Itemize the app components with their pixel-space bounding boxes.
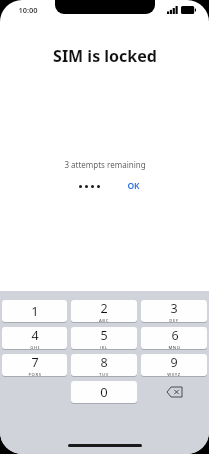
staticText: 3 [170, 300, 178, 317]
staticText: DEF [169, 318, 179, 322]
staticText: JKL [100, 345, 108, 349]
button[interactable]: 2 [71, 300, 137, 322]
staticText: 9 [170, 354, 178, 371]
button[interactable]: 8 [71, 354, 137, 376]
staticText: 5 [100, 327, 108, 344]
button[interactable] [67, 179, 111, 193]
button[interactable]: OK [125, 178, 142, 194]
staticText: ABC [99, 318, 109, 322]
staticText: 1 [31, 302, 39, 320]
staticText: SIM is locked [53, 45, 157, 67]
button[interactable]: 0 [71, 381, 137, 403]
button[interactable]: Delete [141, 381, 207, 403]
staticText: TUV [99, 372, 109, 376]
staticText: 2 [100, 300, 108, 317]
staticText: 8 [100, 354, 108, 371]
button[interactable]: 4 [2, 327, 67, 349]
staticText: 0 [100, 383, 108, 401]
button[interactable]: 7 [2, 354, 67, 376]
button[interactable]: 3 [141, 300, 207, 322]
staticText: 7 [31, 354, 39, 371]
staticText: WXYZ [167, 372, 181, 376]
button[interactable]: 9 [141, 354, 207, 376]
staticText: GHI [30, 345, 40, 349]
staticText: OK [127, 180, 140, 192]
button[interactable]: 1 [2, 300, 67, 322]
staticText: 4 [31, 327, 39, 344]
staticText: 10:00 [18, 5, 38, 15]
staticText: 3 attempts remaining [64, 159, 146, 170]
button[interactable]: 6 [141, 327, 207, 349]
staticText: MNO [168, 345, 181, 349]
staticText: 6 [171, 327, 179, 344]
button[interactable]: 5 [71, 327, 137, 349]
staticText: PQRS [28, 372, 42, 376]
